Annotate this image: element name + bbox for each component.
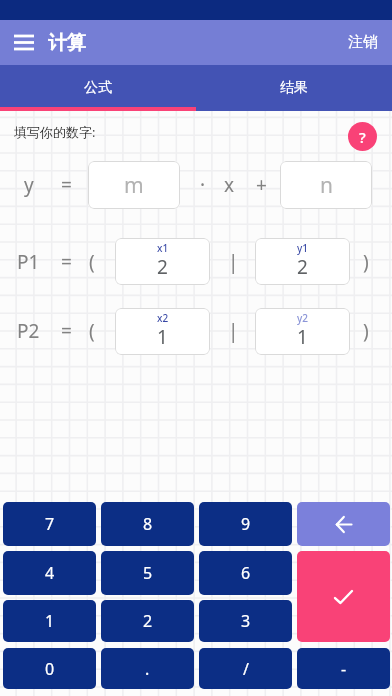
staticText: )	[363, 318, 369, 344]
staticText: 结果	[280, 79, 308, 97]
staticText: 注销	[348, 33, 378, 52]
button[interactable]: y2	[255, 308, 350, 355]
staticText: (	[89, 249, 95, 275]
staticText: y1	[297, 241, 308, 255]
staticText: =	[61, 318, 72, 344]
staticText: =	[61, 249, 72, 275]
button[interactable]: .	[101, 648, 194, 689]
button[interactable]: ?	[348, 122, 377, 151]
staticText: 填写你的数字:	[14, 123, 96, 141]
staticText: /	[243, 658, 249, 680]
staticText: 2	[157, 254, 168, 280]
staticText: |	[228, 249, 239, 275]
staticText: P2	[17, 318, 40, 344]
button[interactable]: m	[88, 161, 180, 209]
button[interactable]: /	[199, 648, 292, 689]
staticText: 8	[143, 513, 153, 535]
button[interactable]: 3	[199, 600, 292, 642]
staticText: |	[228, 318, 239, 344]
button[interactable]: -	[297, 648, 390, 689]
button[interactable]: 4	[3, 551, 96, 595]
staticText: x2	[157, 311, 169, 325]
staticText: +	[256, 172, 267, 198]
staticText: ·	[200, 172, 206, 198]
staticText: )	[363, 249, 369, 275]
staticText: 1	[157, 324, 168, 350]
staticText: m	[124, 171, 144, 200]
staticText: 1	[297, 324, 308, 350]
button[interactable]	[297, 551, 390, 642]
button[interactable]: 1	[3, 600, 96, 642]
staticText: x1	[157, 241, 169, 255]
button[interactable]: 0	[3, 648, 96, 689]
button[interactable]: 7	[3, 502, 96, 546]
button[interactable]: x1	[115, 238, 210, 285]
staticText: x	[224, 172, 235, 198]
staticText: -	[341, 658, 347, 680]
staticText: 2	[297, 254, 308, 280]
staticText: 2	[143, 610, 153, 632]
staticText: 6	[241, 562, 251, 584]
button[interactable]: 5	[101, 551, 194, 595]
staticText: P1	[17, 249, 40, 275]
button[interactable]: 注销	[348, 20, 392, 65]
staticText: 计算	[48, 31, 86, 55]
button[interactable]: 结果	[196, 65, 392, 111]
button[interactable]: y1	[255, 238, 350, 285]
button[interactable]	[0, 20, 48, 65]
staticText: 公式	[84, 79, 112, 97]
staticText: 3	[241, 610, 251, 632]
staticText: .	[145, 658, 150, 680]
button[interactable]: 2	[101, 600, 194, 642]
button[interactable]: 8	[101, 502, 194, 546]
button[interactable]: 公式	[0, 65, 196, 111]
staticText: ?	[359, 127, 366, 147]
button[interactable]: x2	[115, 308, 210, 355]
staticText: 4	[45, 562, 55, 584]
staticText: 9	[241, 513, 251, 535]
staticText: (	[89, 318, 95, 344]
staticText: 7	[45, 513, 55, 535]
staticText: 5	[143, 562, 153, 584]
staticText: 1	[45, 610, 55, 632]
button[interactable]	[297, 502, 390, 546]
button[interactable]: 9	[199, 502, 292, 546]
staticText: 0	[45, 658, 55, 680]
staticText: =	[61, 172, 72, 198]
staticText: y2	[297, 311, 308, 325]
button[interactable]: 6	[199, 551, 292, 595]
staticText: n	[320, 171, 333, 200]
staticText: y	[24, 172, 34, 198]
button[interactable]: n	[280, 161, 372, 209]
